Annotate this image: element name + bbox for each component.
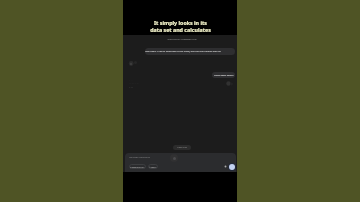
staticText: It simply looks in its <box>154 19 207 26</box>
staticText: Message DeepSeek <box>129 156 150 159</box>
button[interactable]: Send <box>228 163 236 171</box>
staticText: how many N are in DEEPSEEK if you know, … <box>145 50 235 53</box>
button[interactable]: ◆ DeepThink (R1) <box>129 164 146 169</box>
staticText: ⊕ Search <box>149 166 157 168</box>
button[interactable]: Attach <box>224 165 227 168</box>
button[interactable]: how many N are in DEEPSEEK if you know, … <box>145 48 235 55</box>
staticText: ◆ DeepThink (R1) <box>130 166 145 168</box>
staticText: check again please <box>214 74 234 77</box>
staticText: New chat <box>177 146 188 149</box>
button[interactable]: New chat <box>173 145 191 150</box>
button[interactable]: check again please <box>212 72 235 78</box>
staticText: 2 N <box>129 85 133 88</box>
button[interactable]: ⊕ Search <box>148 164 158 169</box>
staticText: Searching for a DEEPSEEK Chat <box>125 38 239 41</box>
staticText: data set and calculates <box>150 26 211 33</box>
